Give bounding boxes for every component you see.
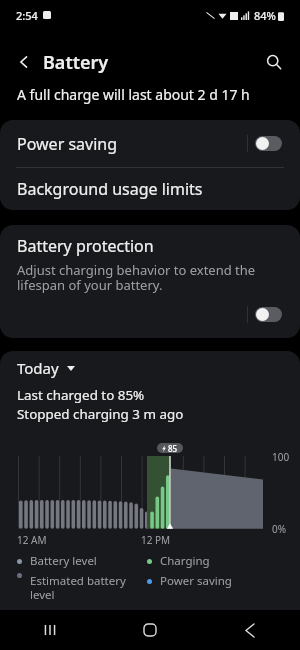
staticText: 100 bbox=[272, 450, 290, 464]
staticText: 2:54 bbox=[16, 8, 38, 23]
staticText: 12 AM bbox=[17, 533, 47, 547]
button[interactable]: Back bbox=[10, 48, 38, 76]
button[interactable]: Recents bbox=[0, 610, 100, 650]
button[interactable]: Today bbox=[17, 358, 75, 378]
staticText: Background usage limits bbox=[17, 178, 203, 200]
button[interactable]: Search bbox=[260, 48, 288, 76]
staticText: 85 bbox=[168, 443, 178, 453]
button[interactable]: Home bbox=[100, 610, 200, 650]
staticText: Battery protection bbox=[17, 235, 154, 257]
staticText: Adjust charging behavior to extend the l… bbox=[17, 261, 256, 294]
staticText: Estimated battery level bbox=[30, 573, 126, 602]
staticText: 12 PM bbox=[141, 533, 171, 547]
button[interactable]: Toggle bbox=[255, 136, 282, 151]
staticText: Last charged to 85% Stopped charging 3 m… bbox=[17, 386, 184, 423]
staticText: Today bbox=[17, 358, 59, 378]
button[interactable]: Toggle bbox=[255, 307, 282, 322]
staticText: Battery level bbox=[30, 553, 97, 569]
button[interactable]: Back bbox=[200, 610, 300, 650]
button[interactable]: Background usage limits bbox=[0, 168, 300, 210]
button[interactable]: Power saving bbox=[0, 120, 300, 167]
staticText: Power saving bbox=[160, 573, 232, 589]
staticText: 84% bbox=[254, 8, 276, 23]
staticText: Power saving bbox=[17, 133, 247, 155]
staticText: Battery bbox=[43, 50, 109, 75]
staticText: A full charge will last about 2 d 17 h bbox=[17, 85, 250, 104]
button[interactable]: Battery protection bbox=[0, 225, 300, 338]
staticText: Charging bbox=[160, 553, 210, 569]
staticText: 0% bbox=[272, 522, 287, 536]
